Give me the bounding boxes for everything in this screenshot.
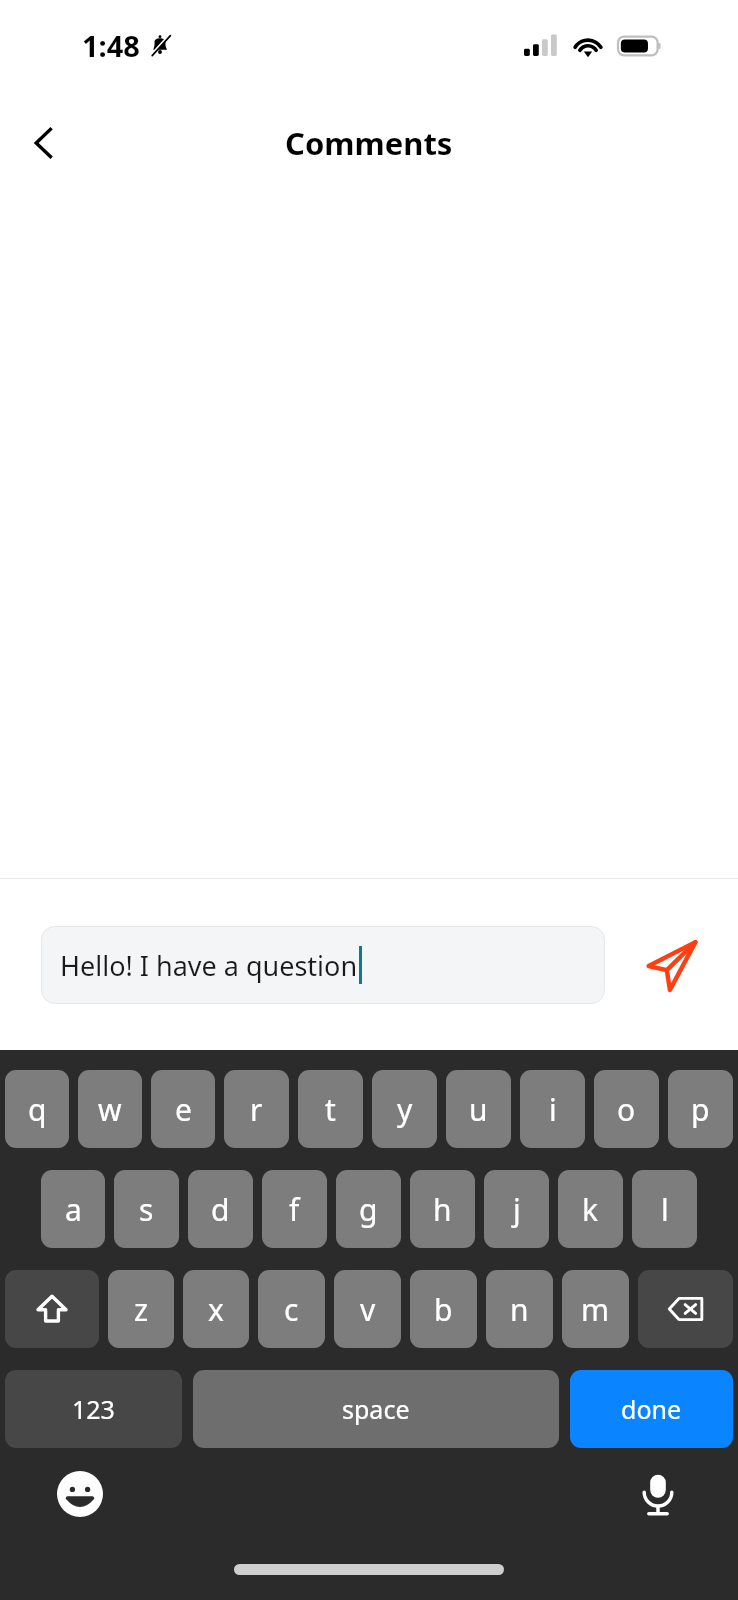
- button[interactable]: p: [668, 1070, 733, 1148]
- staticText: 123: [72, 1392, 115, 1426]
- staticText: b: [434, 1289, 453, 1330]
- button[interactable]: h: [410, 1170, 475, 1248]
- staticText: 1:48: [82, 26, 140, 65]
- button[interactable]: space: [193, 1370, 559, 1448]
- staticText: Hello! I have a question: [60, 947, 358, 984]
- button[interactable]: b: [410, 1270, 477, 1348]
- button[interactable]: Shift: [5, 1270, 99, 1348]
- button[interactable]: c: [258, 1270, 325, 1348]
- button[interactable]: r: [224, 1070, 289, 1148]
- button[interactable]: Hello! I have a question: [41, 926, 605, 1004]
- button[interactable]: x: [183, 1270, 249, 1348]
- staticText: h: [433, 1189, 452, 1230]
- staticText: s: [139, 1189, 154, 1230]
- staticText: z: [134, 1289, 149, 1330]
- button[interactable]: u: [446, 1070, 511, 1148]
- button[interactable]: a: [41, 1170, 105, 1248]
- button[interactable]: Voice input: [630, 1466, 686, 1522]
- button[interactable]: z: [108, 1270, 174, 1348]
- staticText: done: [621, 1392, 682, 1426]
- staticText: p: [691, 1089, 710, 1130]
- button[interactable]: s: [114, 1170, 179, 1248]
- staticText: w: [98, 1089, 122, 1130]
- button[interactable]: t: [298, 1070, 363, 1148]
- staticText: i: [549, 1089, 557, 1130]
- staticText: d: [211, 1189, 230, 1230]
- button[interactable]: e: [151, 1070, 215, 1148]
- button[interactable]: w: [78, 1070, 142, 1148]
- staticText: q: [28, 1089, 47, 1130]
- staticText: o: [617, 1089, 636, 1130]
- staticText: y: [397, 1089, 413, 1130]
- staticText: c: [284, 1289, 299, 1330]
- staticText: k: [582, 1189, 599, 1230]
- button[interactable]: n: [486, 1270, 553, 1348]
- button[interactable]: i: [520, 1070, 585, 1148]
- staticText: j: [513, 1189, 521, 1230]
- button[interactable]: d: [188, 1170, 253, 1248]
- button[interactable]: f: [262, 1170, 327, 1248]
- staticText: m: [581, 1289, 610, 1330]
- button[interactable]: j: [484, 1170, 549, 1248]
- staticText: a: [65, 1189, 82, 1230]
- button[interactable]: Send: [634, 927, 710, 1003]
- button[interactable]: k: [558, 1170, 623, 1248]
- button[interactable]: y: [372, 1070, 437, 1148]
- button[interactable]: g: [336, 1170, 401, 1248]
- staticText: u: [469, 1089, 488, 1130]
- staticText: n: [510, 1289, 529, 1330]
- button[interactable]: v: [334, 1270, 401, 1348]
- staticText: t: [325, 1089, 336, 1130]
- staticText: g: [359, 1189, 378, 1230]
- staticText: Comments: [285, 122, 453, 164]
- button[interactable]: done: [570, 1370, 733, 1448]
- button[interactable]: q: [5, 1070, 69, 1148]
- button[interactable]: Emoji: [52, 1466, 108, 1522]
- staticText: r: [250, 1089, 263, 1130]
- staticText: v: [360, 1289, 376, 1330]
- button[interactable]: o: [594, 1070, 659, 1148]
- button[interactable]: 123: [5, 1370, 182, 1448]
- staticText: e: [175, 1089, 192, 1130]
- staticText: space: [342, 1392, 410, 1426]
- button[interactable]: m: [562, 1270, 629, 1348]
- staticText: l: [661, 1189, 669, 1230]
- button[interactable]: l: [632, 1170, 697, 1248]
- staticText: x: [208, 1289, 224, 1330]
- staticText: f: [289, 1189, 300, 1230]
- button[interactable]: Back: [10, 112, 72, 174]
- button[interactable]: Backspace: [638, 1270, 733, 1348]
